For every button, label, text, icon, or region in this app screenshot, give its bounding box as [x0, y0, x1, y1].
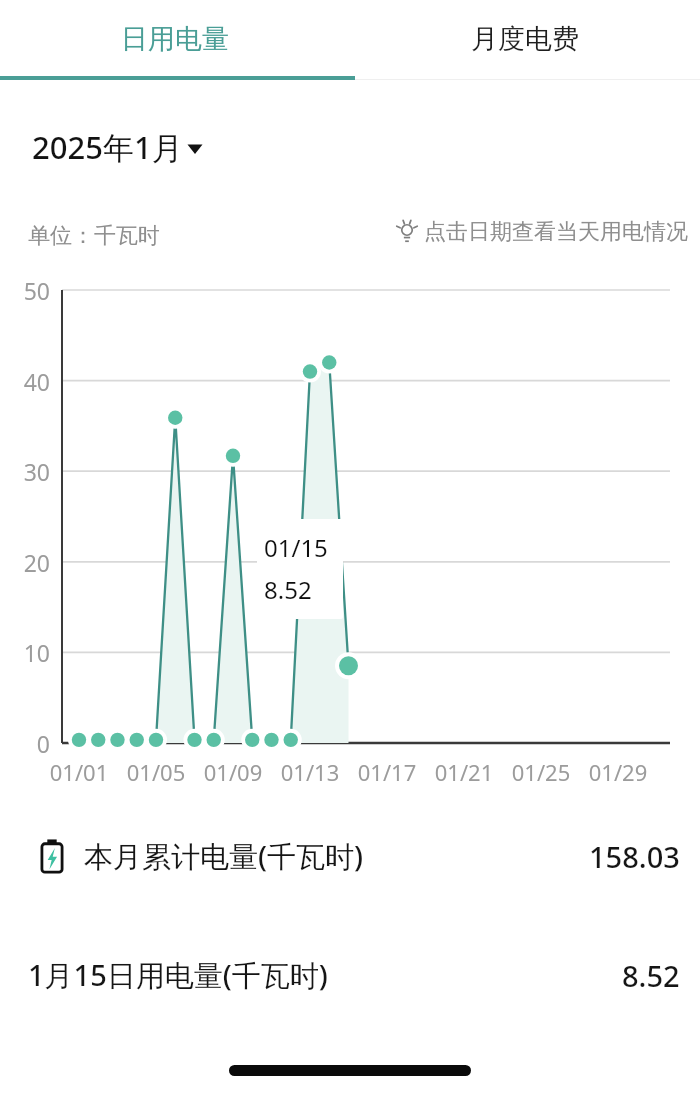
- button[interactable]: 1月15日用电量(千瓦时): [0, 928, 700, 1022]
- button[interactable]: 本月累计电量(千瓦时): [0, 806, 700, 906]
- staticText: 01/01: [39, 757, 119, 787]
- staticText: 1月15日用电量(千瓦时): [28, 955, 328, 995]
- staticText: 2025年1月: [32, 126, 183, 168]
- button[interactable]: Tip: [392, 214, 688, 250]
- staticText: 01/09: [193, 757, 273, 787]
- staticText: 0: [0, 728, 50, 759]
- staticText: 日用电量: [121, 22, 229, 56]
- staticText: 10: [0, 637, 50, 668]
- staticText: 8.52: [622, 956, 680, 995]
- staticText: 30: [0, 456, 50, 487]
- staticText: 01/13: [270, 757, 350, 787]
- staticText: 8.52: [264, 573, 312, 606]
- other: Tip: [392, 217, 422, 247]
- staticText: 01/05: [116, 757, 196, 787]
- button[interactable]: 日用电量: [0, 0, 350, 78]
- button[interactable]: 2025年1月: [32, 126, 207, 168]
- staticText: 01/25: [501, 757, 581, 787]
- staticText: 01/21: [424, 757, 504, 787]
- staticText: 月度电费: [471, 22, 579, 56]
- staticText: 40: [0, 366, 50, 397]
- staticText: 点击日期查看当天用电情况: [424, 218, 688, 246]
- staticText: 01/17: [347, 757, 427, 787]
- staticText: 01/15: [264, 531, 328, 564]
- staticText: 01/29: [578, 757, 658, 787]
- staticText: 158.03: [589, 837, 680, 876]
- staticText: 50: [0, 275, 50, 306]
- staticText: 20: [0, 547, 50, 578]
- button[interactable]: 月度电费: [350, 0, 700, 78]
- staticText: 本月累计电量(千瓦时): [84, 836, 364, 876]
- staticText: 单位：千瓦时: [28, 222, 160, 250]
